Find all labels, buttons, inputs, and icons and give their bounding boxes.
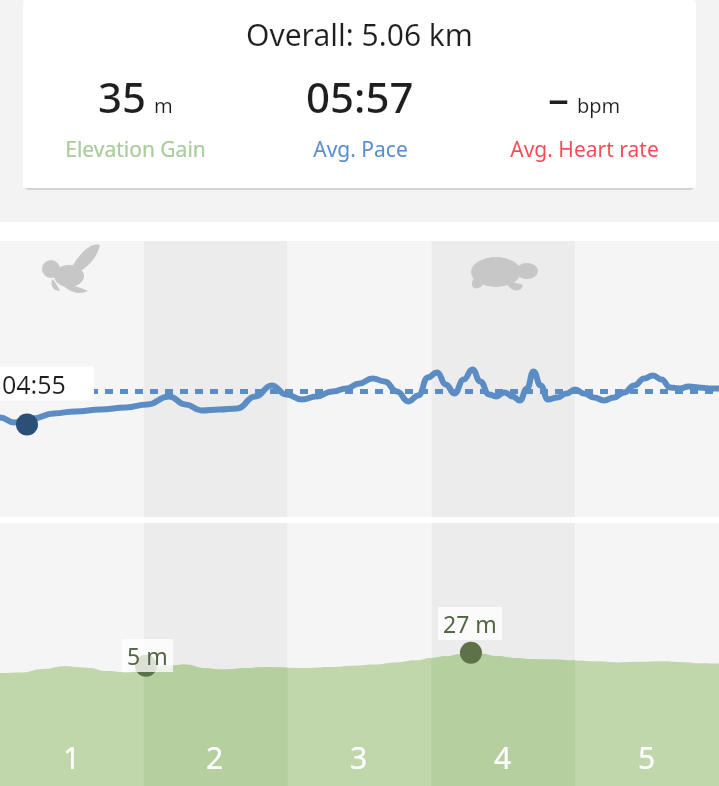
- staticText: –: [548, 68, 570, 125]
- staticText: 4: [494, 737, 512, 778]
- button[interactable]: 35: [23, 68, 248, 164]
- staticText: Avg. Heart rate: [510, 135, 659, 164]
- button[interactable]: 05:57: [248, 68, 472, 164]
- staticText: Avg. Pace: [313, 135, 408, 164]
- staticText: 04:55: [2, 367, 66, 401]
- staticText: bpm: [577, 92, 621, 119]
- button[interactable]: Overall: 5.06 km: [23, 0, 696, 188]
- button[interactable]: Fastest kilometre: [40, 249, 102, 295]
- staticText: Overall: 5.06 km: [246, 14, 473, 55]
- staticText: 1: [63, 737, 81, 778]
- button[interactable]: Slowest kilometre: [472, 249, 538, 295]
- staticText: 3: [350, 737, 368, 778]
- staticText: 05:57: [306, 68, 414, 125]
- staticText: 5 m: [127, 640, 168, 671]
- staticText: 35: [98, 68, 147, 125]
- staticText: 27 m: [443, 608, 497, 639]
- staticText: 5: [638, 737, 656, 778]
- button[interactable]: 04:55: [0, 241, 719, 517]
- staticText: 2: [206, 737, 224, 778]
- staticText: m: [154, 92, 173, 119]
- button[interactable]: –: [472, 68, 696, 164]
- staticText: Elevation Gain: [65, 135, 206, 164]
- button[interactable]: 5 m: [0, 523, 719, 786]
